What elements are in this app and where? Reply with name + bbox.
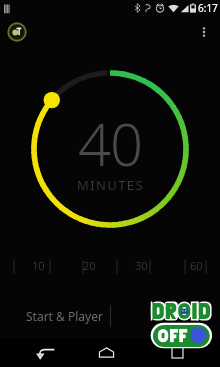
button[interactable]: Start & Player [0,294,128,338]
button[interactable]: App logo [5,20,29,44]
staticText: 20 [83,258,96,273]
staticText: 60 [190,258,203,273]
staticText: 30 [135,258,148,273]
staticText: Start & Player [26,308,103,324]
button[interactable]: Home [91,338,121,367]
button[interactable]: Back [32,338,62,367]
button[interactable]: More options [191,19,217,45]
staticText: MINUTES [77,176,144,194]
staticText: 6:17 [198,1,218,15]
staticText: 10 [32,258,45,273]
staticText: 40 [78,104,143,183]
button[interactable]: Recent apps [162,338,192,367]
